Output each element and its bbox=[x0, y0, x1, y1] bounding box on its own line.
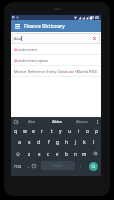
staticText: s bbox=[28, 139, 31, 146]
staticText: ?123 bbox=[14, 164, 22, 169]
button[interactable]: More options bbox=[94, 117, 101, 126]
button[interactable]: x bbox=[34, 148, 44, 159]
staticText: o bbox=[86, 128, 90, 135]
button[interactable]: b bbox=[62, 148, 71, 159]
button[interactable]: Emoji bbox=[30, 159, 38, 173]
staticText: Abandonment bbox=[14, 47, 37, 52]
staticText: a bbox=[18, 139, 21, 146]
button[interactable]: e bbox=[29, 126, 38, 137]
button[interactable]: o bbox=[83, 126, 92, 137]
staticText: Aba bbox=[14, 36, 21, 41]
button[interactable]: d bbox=[34, 137, 44, 148]
staticText: Market Reference Entity Database (Markit… bbox=[14, 69, 98, 74]
staticText: Finance Dictionary bbox=[24, 23, 65, 29]
button[interactable]: z bbox=[24, 148, 34, 159]
button[interactable]: u bbox=[65, 126, 74, 137]
button[interactable]: y bbox=[56, 126, 65, 137]
staticText: Abuse bbox=[76, 119, 88, 124]
button[interactable]: ?123 bbox=[12, 159, 23, 173]
button[interactable]: c bbox=[44, 148, 53, 159]
button[interactable]: t bbox=[47, 126, 56, 137]
staticText: t bbox=[51, 128, 53, 135]
staticText: i bbox=[78, 128, 80, 135]
staticText: v bbox=[56, 151, 59, 157]
staticText: p bbox=[95, 128, 99, 135]
button[interactable]: Backspace bbox=[89, 148, 101, 159]
button[interactable]: w bbox=[20, 126, 29, 137]
button[interactable]: p bbox=[92, 126, 101, 137]
button[interactable]: l bbox=[89, 137, 98, 148]
staticText: 11:05 bbox=[91, 16, 100, 20]
staticText: h bbox=[65, 139, 69, 146]
staticText: y bbox=[59, 128, 62, 135]
staticText: Abandonment option bbox=[14, 58, 49, 63]
button[interactable]: a bbox=[14, 137, 24, 148]
staticText: g bbox=[56, 139, 60, 146]
button[interactable]: , bbox=[25, 159, 33, 173]
staticText: English bbox=[53, 164, 63, 168]
button[interactable]: Abuse bbox=[69, 117, 94, 126]
button[interactable]: k bbox=[80, 137, 89, 148]
staticText: d bbox=[37, 139, 41, 146]
staticText: Aba bbox=[28, 119, 36, 124]
button[interactable]: n bbox=[71, 148, 80, 159]
button[interactable]: Clear search bbox=[91, 35, 98, 42]
button[interactable]: j bbox=[71, 137, 80, 148]
button[interactable]: Abba bbox=[44, 117, 69, 126]
staticText: , bbox=[28, 163, 30, 169]
button[interactable]: s bbox=[24, 137, 34, 148]
staticText: r bbox=[41, 128, 44, 135]
staticText: Abba bbox=[52, 119, 62, 124]
staticText: f bbox=[48, 139, 50, 146]
button[interactable]: g bbox=[53, 137, 62, 148]
button[interactable]: f bbox=[44, 137, 53, 148]
staticText: e bbox=[32, 128, 35, 135]
button[interactable]: Aba bbox=[20, 117, 44, 126]
staticText: q bbox=[14, 128, 18, 135]
button[interactable]: i bbox=[74, 126, 83, 137]
button[interactable]: Abandonment option bbox=[11, 55, 101, 66]
staticText: l bbox=[93, 139, 95, 146]
staticText: x bbox=[38, 151, 41, 157]
staticText: b bbox=[65, 151, 68, 157]
button[interactable]: Abandonment bbox=[11, 44, 101, 55]
button[interactable]: m bbox=[80, 148, 89, 159]
staticText: n bbox=[74, 151, 77, 157]
button[interactable]: r bbox=[38, 126, 47, 137]
button[interactable]: q bbox=[11, 126, 20, 137]
staticText: m bbox=[82, 151, 87, 157]
button[interactable]: h bbox=[62, 137, 71, 148]
button[interactable]: Space bbox=[41, 161, 75, 170]
button[interactable]: Market Reference Entity Database (Markit… bbox=[11, 66, 101, 77]
staticText: j bbox=[75, 139, 77, 146]
staticText: z bbox=[28, 151, 31, 157]
staticText: c bbox=[47, 151, 50, 157]
button[interactable]: . bbox=[77, 159, 85, 173]
button[interactable]: Search bbox=[85, 159, 101, 173]
staticText: k bbox=[83, 139, 86, 146]
button[interactable]: Google bbox=[11, 117, 20, 126]
button[interactable]: Open navigation menu bbox=[11, 20, 23, 32]
button[interactable]: Shift bbox=[11, 148, 24, 159]
staticText: u bbox=[68, 128, 72, 135]
staticText: . bbox=[80, 163, 82, 169]
button[interactable]: v bbox=[53, 148, 62, 159]
staticText: w bbox=[23, 128, 27, 135]
